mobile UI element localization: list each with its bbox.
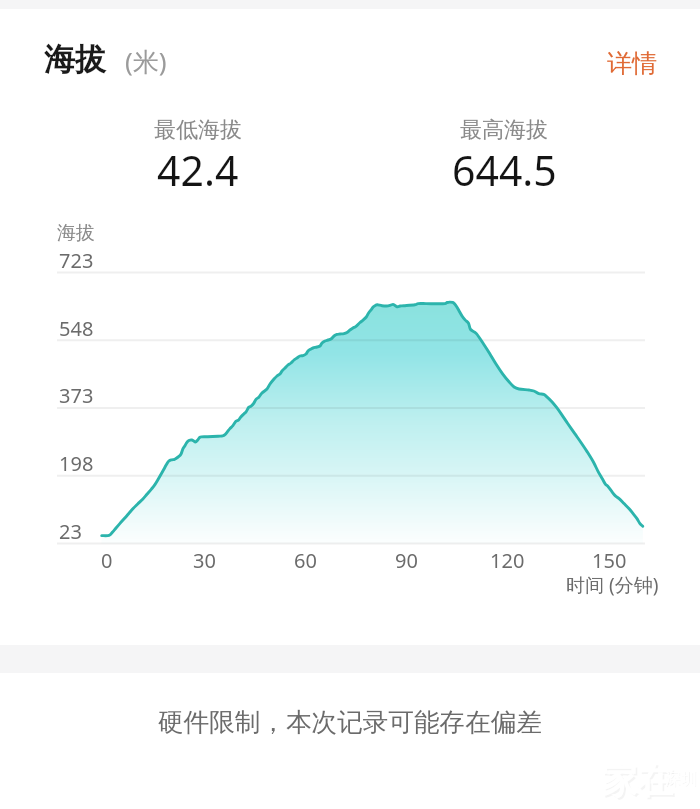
button[interactable]: 最低海拔 <box>88 116 308 200</box>
staticText: 0 <box>101 547 113 574</box>
staticText: 23 <box>59 518 82 545</box>
staticText: 120 <box>490 547 525 574</box>
staticText: 最高海拔 <box>460 116 548 144</box>
staticText: 42.4 <box>157 142 239 198</box>
button[interactable]: 详情 <box>589 36 675 91</box>
staticText: 90 <box>395 547 418 574</box>
staticText: 723 <box>59 247 94 274</box>
button[interactable]: 最高海拔 <box>394 116 614 200</box>
staticText: 硬件限制，本次记录可能存在偏差 <box>158 706 542 738</box>
staticText: 150 <box>592 547 627 574</box>
staticText: 60 <box>294 547 317 574</box>
staticText: 详情 <box>607 48 657 79</box>
staticText: 家在 <box>603 760 675 805</box>
staticText: 30 <box>193 547 216 574</box>
staticText: (米) <box>125 43 167 79</box>
staticText: 373 <box>59 382 94 409</box>
staticText: 198 <box>59 450 94 477</box>
staticText: 最低海拔 <box>154 116 242 144</box>
staticText: 548 <box>59 315 94 342</box>
staticText: 644.5 <box>452 142 557 198</box>
staticText: 时间 (分钟) <box>566 572 659 598</box>
staticText: 海拔 <box>44 40 106 79</box>
staticText: 海拔 <box>57 221 95 245</box>
staticText: 家在 <box>601 758 673 803</box>
